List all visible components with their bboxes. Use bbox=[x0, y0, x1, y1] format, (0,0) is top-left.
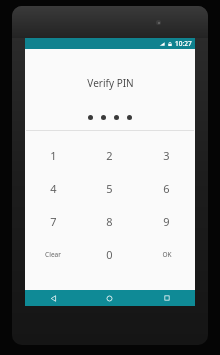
button[interactable]: OK bbox=[138, 238, 195, 271]
button[interactable]: 9 bbox=[138, 205, 195, 238]
staticText: 7 bbox=[50, 214, 57, 229]
button[interactable]: Recent apps bbox=[138, 290, 195, 306]
staticText: 9 bbox=[163, 214, 170, 229]
button[interactable]: Home bbox=[81, 290, 138, 306]
staticText: 5 bbox=[106, 181, 113, 196]
staticText: OK bbox=[162, 250, 172, 259]
button[interactable]: 1 bbox=[25, 139, 81, 172]
staticText: 1 bbox=[50, 148, 57, 163]
button[interactable]: Clear bbox=[25, 238, 81, 271]
staticText: Clear bbox=[45, 250, 61, 259]
staticText: 2 bbox=[106, 148, 113, 163]
staticText: 0 bbox=[106, 247, 113, 262]
button[interactable]: 2 bbox=[81, 139, 138, 172]
button[interactable]: 8 bbox=[81, 205, 138, 238]
button[interactable]: 6 bbox=[138, 172, 195, 205]
staticText: Verify PIN bbox=[87, 76, 134, 90]
staticText: 8 bbox=[106, 214, 113, 229]
button[interactable]: 5 bbox=[81, 172, 138, 205]
button[interactable]: 3 bbox=[138, 139, 195, 172]
button[interactable]: 0 bbox=[81, 238, 138, 271]
button[interactable]: 4 bbox=[25, 172, 81, 205]
button[interactable]: Back bbox=[25, 290, 81, 306]
button[interactable]: 7 bbox=[25, 205, 81, 238]
staticText: 4 bbox=[50, 181, 57, 196]
staticText: 10:27 bbox=[175, 39, 192, 48]
staticText: 6 bbox=[163, 181, 170, 196]
staticText: 3 bbox=[163, 148, 170, 163]
